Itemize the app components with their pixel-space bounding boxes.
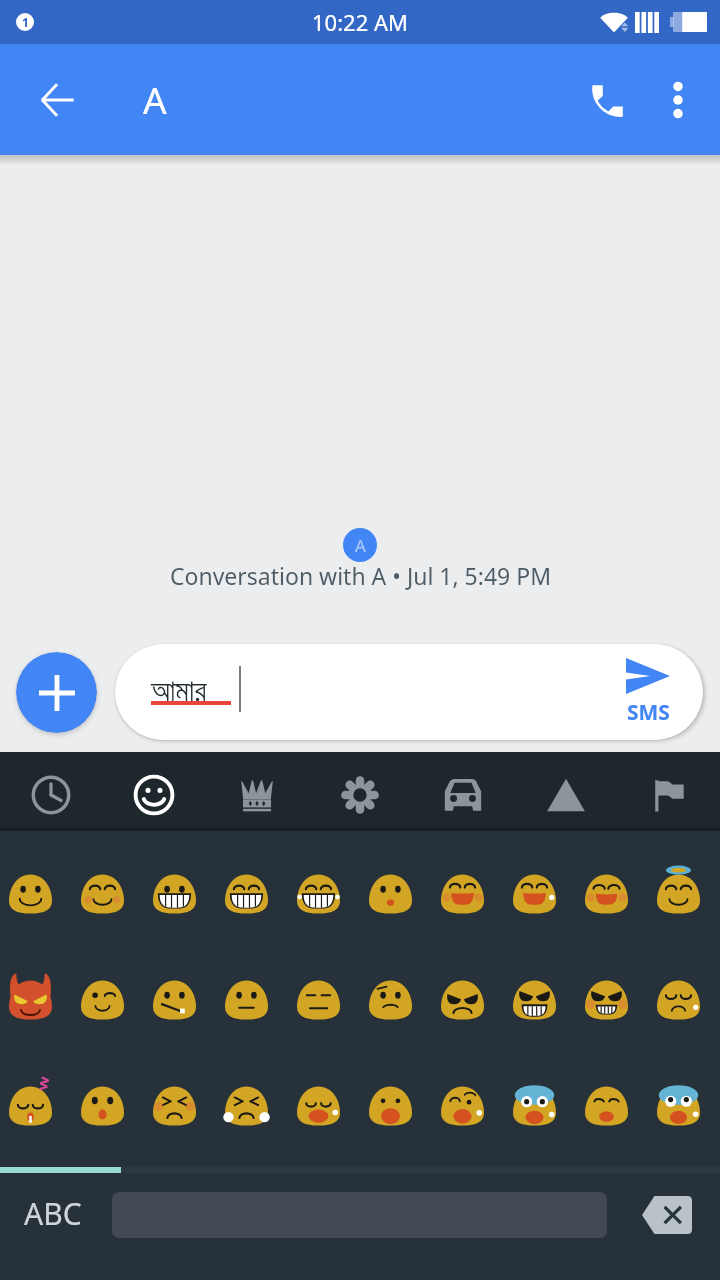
button[interactable]: Disappointed face	[648, 937, 720, 1043]
button[interactable]: Laughing face	[576, 831, 648, 937]
button[interactable]: Smiling face with halo	[648, 831, 720, 937]
button[interactable]: Grimacing face	[504, 937, 576, 1043]
button[interactable]: Winking face	[72, 937, 144, 1043]
button[interactable]: Anxious face with sweat	[504, 1043, 576, 1149]
button[interactable]: Send SMS	[610, 652, 686, 732]
button[interactable]: আমার	[115, 644, 703, 740]
staticText: A	[355, 534, 366, 557]
button[interactable]: Call	[570, 64, 642, 136]
button[interactable]: Grinning face with smiling eyes	[432, 831, 504, 937]
button[interactable]: Anguished face	[360, 1043, 432, 1149]
button[interactable]: Crying face	[648, 1043, 720, 1149]
button[interactable]: Grinning squinting face	[288, 831, 360, 937]
button[interactable]: More options	[642, 64, 714, 136]
button[interactable]: ABC	[8, 1178, 98, 1248]
button[interactable]: Grinning face with sweat	[504, 831, 576, 937]
button[interactable]: Face with open mouth	[72, 1043, 144, 1149]
button[interactable]: Smiling face with smiling eyes	[72, 831, 144, 937]
staticText: A	[143, 74, 167, 124]
button[interactable]: Flag	[617, 752, 720, 831]
staticText: SMS	[627, 698, 670, 727]
button[interactable]: Confused face	[360, 937, 432, 1043]
button[interactable]: Slightly smiling face	[0, 831, 72, 937]
button[interactable]: Backspace	[642, 1196, 692, 1234]
button[interactable]: Activity	[514, 752, 617, 831]
staticText: 1	[22, 14, 29, 30]
staticText: আমার	[151, 677, 207, 707]
button[interactable]: Crown	[205, 752, 308, 831]
button[interactable]: Angry face	[432, 937, 504, 1043]
button[interactable]: Smileys	[102, 752, 205, 831]
staticText: ABC	[24, 1193, 82, 1234]
button[interactable]: Beaming face with smiling eyes	[216, 831, 288, 937]
button[interactable]: Add attachment	[16, 652, 97, 733]
button[interactable]: Sad but relieved face	[576, 1043, 648, 1149]
button[interactable]: Back	[23, 66, 91, 134]
staticText: 10:22 AM	[312, 7, 408, 37]
button[interactable]: Grinning face	[144, 831, 216, 937]
button[interactable]: Car	[411, 752, 514, 831]
button[interactable]: Zipper-mouth face	[144, 937, 216, 1043]
button[interactable]: Flower	[308, 752, 411, 831]
button[interactable]: Fearful face	[432, 1043, 504, 1149]
button[interactable]: Recent	[0, 752, 102, 831]
button[interactable]: Neutral face	[216, 937, 288, 1043]
button[interactable]: Sleeping face	[0, 1043, 72, 1149]
staticText: Conversation with A • Jul 1, 5:49 PM	[170, 560, 551, 591]
button[interactable]: Confounded face	[144, 1043, 216, 1149]
button[interactable]: Weary face	[288, 1043, 360, 1149]
button[interactable]: Face with steam	[216, 1043, 288, 1149]
button[interactable]: Smiling face with horns	[0, 937, 72, 1043]
button[interactable]: Face with open mouth	[360, 831, 432, 937]
button[interactable]: Expressionless face	[288, 937, 360, 1043]
button[interactable]: Pouting face	[576, 937, 648, 1043]
